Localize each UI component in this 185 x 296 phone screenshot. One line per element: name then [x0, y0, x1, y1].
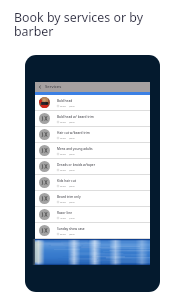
staticText: $45.00 [69, 169, 75, 171]
staticText: $50.00 [69, 121, 75, 123]
staticText: $15.00 [69, 217, 75, 219]
staticText: 15 min [60, 217, 66, 219]
staticText: Mens and young adults [57, 147, 93, 151]
staticText: Book by services or by barber [14, 9, 159, 40]
staticText: $30.00 [69, 185, 75, 187]
staticText: 30 min [60, 153, 66, 155]
staticText: 45 min [60, 121, 66, 123]
button[interactable]: Mens and young adults [35, 143, 150, 158]
button[interactable]: Hair cut w/beard trim [35, 127, 150, 142]
staticText: $20.00 [69, 201, 75, 203]
staticText: $35.00 [69, 153, 75, 155]
staticText: Services [45, 84, 62, 90]
button[interactable]: Kids hair cut [35, 175, 150, 190]
button[interactable]: Sunday show case [35, 223, 150, 238]
staticText: Bald head [57, 99, 73, 103]
staticText: 30 min [60, 105, 66, 107]
button[interactable]: Bald head [35, 95, 150, 110]
staticText: 30 min [60, 185, 66, 187]
button[interactable]: Bald head w/ beard trim [35, 111, 150, 126]
staticText: $50.00 [69, 137, 75, 139]
staticText: Razor line [57, 211, 73, 215]
staticText: $60.00 [69, 233, 75, 235]
staticText: Beard trim only [57, 195, 81, 199]
button[interactable]: Dreads or braids w/taper [35, 159, 150, 174]
staticText: Sunday show case [57, 227, 85, 231]
staticText: 20 min [60, 201, 66, 203]
staticText: Hair cut w/beard trim [57, 131, 90, 135]
staticText: Dreads or braids w/taper [57, 163, 96, 167]
staticText: $40.00 [69, 105, 75, 107]
staticText: Kids hair cut [57, 179, 76, 183]
staticText: 60 min [60, 233, 66, 235]
button[interactable]: Back [35, 82, 45, 92]
button[interactable]: Beard trim only [35, 191, 150, 206]
staticText: 45 min [60, 169, 66, 171]
staticText: 45 min [60, 137, 66, 139]
staticText: Bald head w/ beard trim [57, 115, 94, 119]
button[interactable]: Razor line [35, 207, 150, 222]
